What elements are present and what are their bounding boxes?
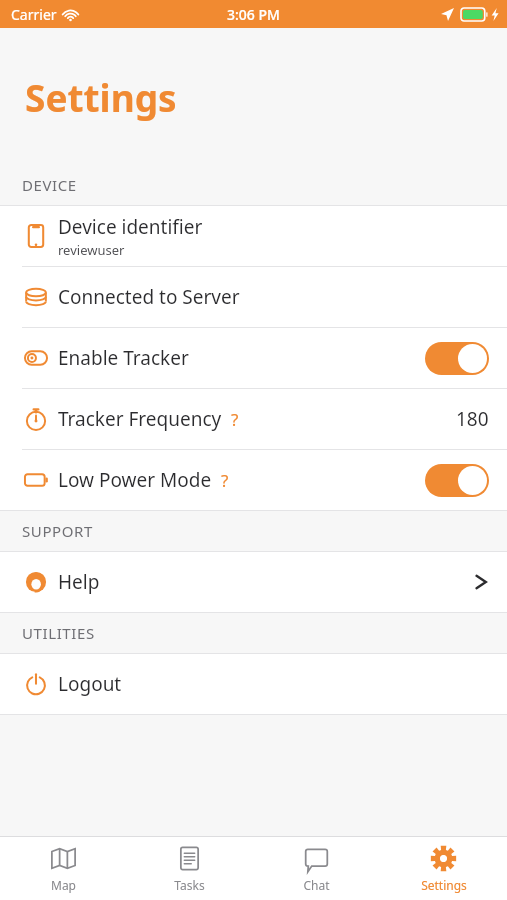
other: Open <box>473 571 489 593</box>
button[interactable]: Low Power Mode <box>0 450 507 510</box>
staticText: UTILITIES <box>22 623 95 643</box>
button[interactable]: Enable Tracker <box>0 328 507 388</box>
button[interactable]: Toggle <box>425 342 489 375</box>
button[interactable]: Logout <box>0 654 507 714</box>
staticText: 3:06 PM <box>227 5 280 24</box>
button[interactable]: ? <box>231 408 239 431</box>
button[interactable]: Device identifier <box>0 206 507 266</box>
staticText: Tasks <box>174 877 205 893</box>
staticText: Low Power Mode <box>58 467 212 493</box>
staticText: SUPPORT <box>22 521 93 541</box>
staticText: Tracker Frequency <box>58 406 222 432</box>
button[interactable]: Toggle <box>425 464 489 497</box>
staticText: Logout <box>58 671 122 697</box>
staticText: Carrier <box>11 5 57 24</box>
button[interactable]: ? <box>221 469 229 492</box>
button[interactable]: Map <box>0 837 126 900</box>
button[interactable]: Help <box>0 552 507 612</box>
button[interactable]: Chat <box>253 837 380 900</box>
button[interactable]: Tracker Frequency <box>0 389 507 449</box>
staticText: Settings <box>25 72 177 122</box>
staticText: Chat <box>303 877 330 893</box>
button[interactable]: Connected to Server <box>0 267 507 327</box>
staticText: Enable Tracker <box>58 345 189 371</box>
staticText: Map <box>51 877 76 893</box>
staticText: Device identifier <box>58 214 203 240</box>
staticText: 180 <box>456 406 489 432</box>
staticText: Settings <box>421 877 467 893</box>
staticText: DEVICE <box>22 175 77 195</box>
staticText: Connected to Server <box>58 284 240 310</box>
button[interactable]: Settings <box>380 837 507 900</box>
staticText: reviewuser <box>58 241 125 259</box>
button[interactable]: Tasks <box>126 837 253 900</box>
staticText: Help <box>58 569 100 595</box>
